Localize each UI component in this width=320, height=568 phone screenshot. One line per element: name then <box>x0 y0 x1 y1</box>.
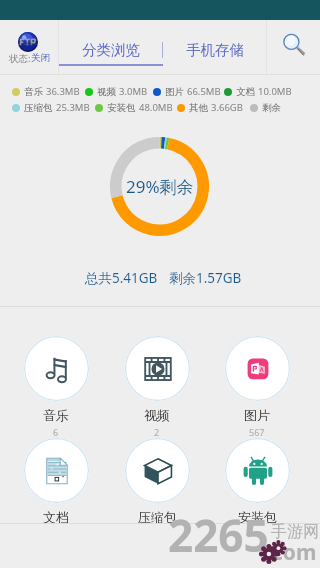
staticText: 文档 <box>236 86 255 98</box>
staticText: 2265 <box>168 505 269 565</box>
staticText: 25.3MB <box>56 101 90 114</box>
staticText: 关闭 <box>31 52 50 64</box>
staticText: 总共5.41GB <box>85 269 158 287</box>
staticText: 567 <box>249 426 265 438</box>
staticText: 文档 <box>43 509 69 525</box>
button[interactable]: 视频 <box>112 336 202 438</box>
staticText: 3.66GB <box>211 101 243 114</box>
button[interactable]: FTP status <box>0 20 58 74</box>
staticText: 剩余 <box>262 102 281 114</box>
staticText: 剩余1.57GB <box>169 269 242 287</box>
button[interactable]: 手机存储 <box>163 20 266 74</box>
staticText: 66.5MB <box>187 85 221 98</box>
staticText: 3.0MB <box>119 85 148 98</box>
button[interactable]: 图片 <box>212 336 302 438</box>
staticText: 图片 <box>165 86 184 98</box>
button[interactable]: 安装包 <box>212 438 302 525</box>
staticText: 图片 <box>244 407 270 423</box>
staticText: 视频 <box>97 86 116 98</box>
button[interactable]: 压缩包 <box>112 438 202 525</box>
staticText: 手游网 <box>271 522 319 542</box>
staticText: 安装包 <box>107 102 136 114</box>
staticText: com <box>272 538 317 567</box>
staticText: 29%剩余 <box>126 175 194 198</box>
button[interactable]: Search <box>267 20 320 70</box>
staticText: 2 <box>154 426 160 438</box>
staticText: 音乐 <box>24 86 43 98</box>
staticText: 手机存储 <box>186 41 244 59</box>
staticText: 音乐 <box>43 407 69 423</box>
staticText: 48.0MB <box>139 101 173 114</box>
button[interactable]: 分类浏览 <box>59 20 163 74</box>
staticText: 视频 <box>144 407 170 423</box>
staticText: 36.3MB <box>46 85 80 98</box>
button[interactable]: 音乐 <box>11 336 101 438</box>
staticText: 6 <box>53 426 59 438</box>
staticText: 状态: <box>9 52 31 65</box>
staticText: 分类浏览 <box>82 41 140 59</box>
staticText: 安装包 <box>238 509 277 525</box>
staticText: 压缩包 <box>24 102 53 114</box>
staticText: 其他 <box>189 102 208 114</box>
staticText: 压缩包 <box>138 509 177 525</box>
button[interactable]: 文档 <box>11 438 101 525</box>
staticText: 10.0MB <box>258 85 292 98</box>
